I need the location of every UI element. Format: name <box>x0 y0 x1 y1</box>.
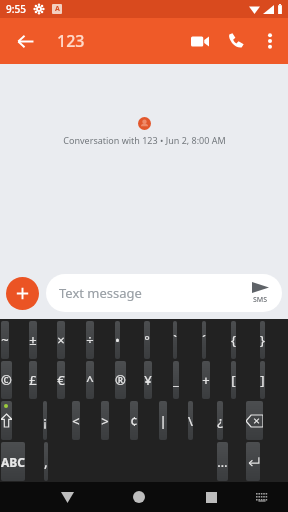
staticText: ABC <box>1 454 25 470</box>
button[interactable]: ´ <box>202 321 206 359</box>
staticText: • <box>115 331 120 349</box>
button[interactable]: Send SMS <box>244 282 276 305</box>
button[interactable]: Text message <box>46 274 282 312</box>
button[interactable]: Video call <box>182 23 218 59</box>
staticText: ¢ <box>130 412 138 430</box>
button[interactable]: ± <box>29 321 37 359</box>
staticText: , <box>44 452 48 471</box>
staticText: ¿ <box>217 412 223 430</box>
button[interactable]: } <box>260 321 265 359</box>
button[interactable]: ¢ <box>130 401 138 440</box>
button[interactable]: Home <box>122 482 156 512</box>
staticText: < <box>72 412 80 430</box>
staticText: [ <box>231 371 236 389</box>
button[interactable] <box>246 442 260 481</box>
button[interactable]: _ <box>173 361 179 399</box>
button[interactable]: { <box>231 321 236 359</box>
button[interactable]: ¡ <box>43 401 47 440</box>
button[interactable]: £ <box>29 361 37 399</box>
button[interactable]: < <box>72 401 80 440</box>
button[interactable]: Call <box>218 23 254 59</box>
button[interactable]: ° <box>144 321 150 359</box>
button[interactable]: ] <box>260 361 265 399</box>
staticText: ´ <box>202 331 206 349</box>
staticText: ° <box>144 331 150 349</box>
button[interactable]: € <box>57 361 65 399</box>
button[interactable]: ` <box>173 321 177 359</box>
staticText: Text message <box>59 284 244 302</box>
staticText: \ <box>188 412 193 430</box>
staticText: } <box>260 331 265 349</box>
staticText: A <box>55 4 60 14</box>
staticText: … <box>217 453 228 471</box>
staticText: ¡ <box>43 412 47 430</box>
staticText: ~ <box>1 331 9 349</box>
button[interactable]: > <box>101 401 109 440</box>
staticText: ÷ <box>86 331 94 349</box>
staticText: | <box>159 412 167 430</box>
button[interactable]: × <box>57 321 65 359</box>
staticText: 123 <box>57 30 85 52</box>
button[interactable]: ® <box>115 361 126 399</box>
button[interactable]: \ <box>188 401 193 440</box>
button[interactable]: Back <box>6 22 44 60</box>
button[interactable]: © <box>1 361 12 399</box>
staticText: ^ <box>86 371 94 389</box>
staticText: + <box>202 371 210 389</box>
staticText: × <box>57 331 65 349</box>
button[interactable]: | <box>159 401 167 440</box>
button[interactable]: Back <box>50 482 84 512</box>
staticText: ¥ <box>144 371 152 389</box>
button[interactable]: ¥ <box>144 361 152 399</box>
staticText: 9:55 <box>6 2 26 16</box>
button[interactable] <box>1 401 12 440</box>
button[interactable]: ~ <box>1 321 9 359</box>
button[interactable]: [ <box>231 361 236 399</box>
staticText: ® <box>115 371 126 389</box>
button[interactable]: Recent apps <box>194 482 228 512</box>
button[interactable]: + <box>202 361 210 399</box>
staticText: { <box>231 331 236 349</box>
staticText: > <box>101 412 109 430</box>
button[interactable]: Switch keyboard <box>249 484 275 510</box>
staticText: ] <box>260 371 265 389</box>
button[interactable]: ^ <box>86 361 94 399</box>
staticText: ` <box>173 331 177 349</box>
staticText: Conversation with 123 • Jun 2, 8:00 AM <box>63 134 226 146</box>
button[interactable]: ABC <box>1 442 25 481</box>
staticText: _ <box>173 371 179 389</box>
button[interactable]: … <box>217 442 228 481</box>
staticText: £ <box>29 371 37 389</box>
staticText: SMS <box>253 295 268 305</box>
button[interactable]: ÷ <box>86 321 94 359</box>
button[interactable] <box>246 401 263 440</box>
staticText: © <box>1 371 12 389</box>
button[interactable]: , <box>44 442 48 481</box>
button[interactable]: More options <box>254 25 286 57</box>
button[interactable]: Add attachment <box>6 277 39 310</box>
button[interactable]: ¿ <box>217 401 223 440</box>
button[interactable]: • <box>115 321 120 359</box>
staticText: € <box>57 371 65 389</box>
staticText: ± <box>29 331 37 349</box>
